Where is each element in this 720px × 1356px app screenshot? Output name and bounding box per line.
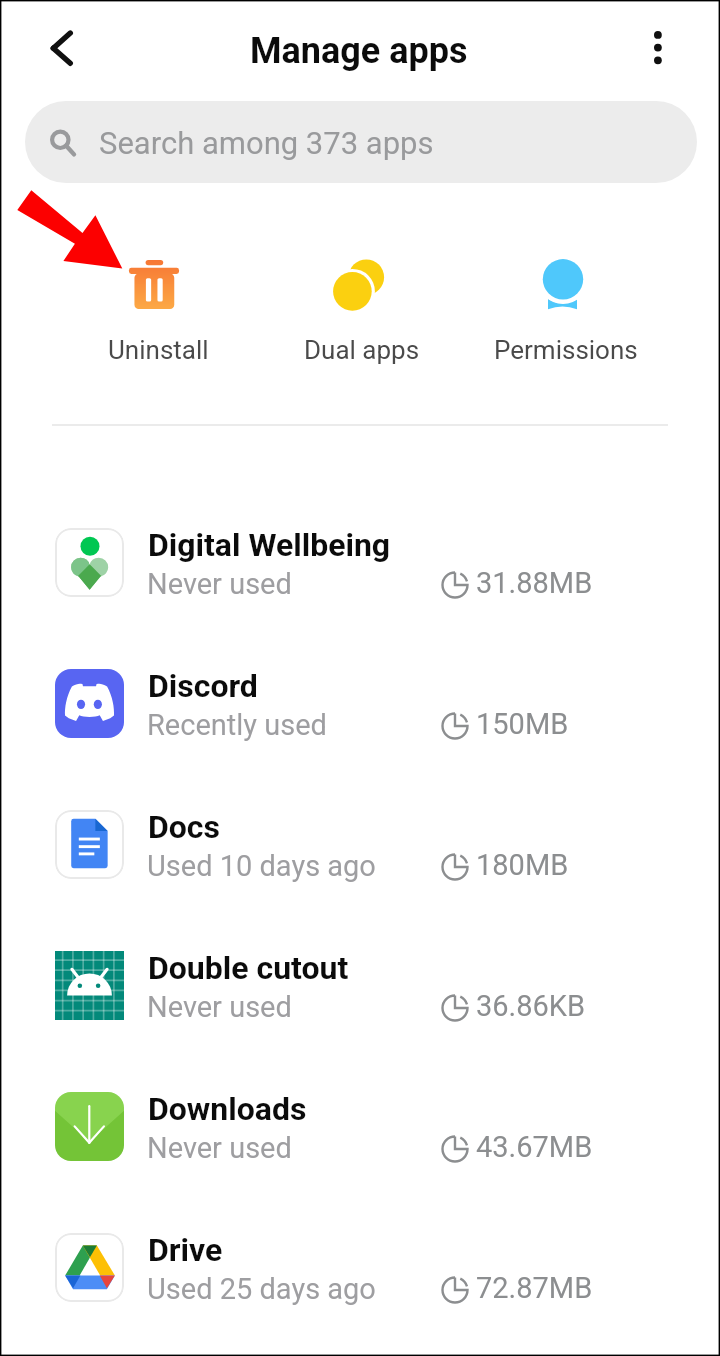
staticText: Search among 373 apps xyxy=(99,125,434,161)
staticText: 150MB xyxy=(476,707,569,741)
staticText: Never used xyxy=(147,990,292,1024)
button[interactable]: Permissions xyxy=(466,238,666,366)
button[interactable]: Back xyxy=(28,23,82,77)
staticText: 31.88MB xyxy=(476,566,593,600)
button[interactable]: Digital Wellbeing xyxy=(2,495,720,636)
button[interactable]: Uninstall xyxy=(58,238,258,366)
staticText: Discord xyxy=(148,667,258,705)
staticText: 36.86KB xyxy=(476,989,586,1023)
staticText: Used 25 days ago xyxy=(147,1272,376,1306)
button[interactable]: Double cutout xyxy=(2,918,720,1059)
staticText: Digital Wellbeing xyxy=(148,526,391,564)
staticText: Docs xyxy=(148,808,220,846)
staticText: Drive xyxy=(148,1231,223,1269)
staticText: Recently used xyxy=(147,708,327,742)
staticText: Downloads xyxy=(148,1090,307,1128)
button[interactable]: Dual apps xyxy=(262,238,462,366)
staticText: Manage apps xyxy=(250,30,468,72)
button[interactable]: Docs xyxy=(2,777,720,918)
staticText: Permissions xyxy=(494,335,638,365)
button[interactable]: More options xyxy=(633,23,687,77)
staticText: Uninstall xyxy=(108,335,209,365)
staticText: Never used xyxy=(147,1131,292,1165)
staticText: Used 10 days ago xyxy=(147,849,376,883)
staticText: 72.87MB xyxy=(476,1271,593,1305)
staticText: Dual apps xyxy=(304,335,420,365)
button[interactable]: Search among 373 apps xyxy=(25,101,697,183)
staticText: Double cutout xyxy=(148,949,349,987)
button[interactable]: Downloads xyxy=(2,1059,720,1200)
button[interactable]: Drive xyxy=(2,1200,720,1341)
staticText: Never used xyxy=(147,567,292,601)
staticText: 43.67MB xyxy=(476,1130,593,1164)
button[interactable]: Discord xyxy=(2,636,720,777)
staticText: 180MB xyxy=(476,848,569,882)
